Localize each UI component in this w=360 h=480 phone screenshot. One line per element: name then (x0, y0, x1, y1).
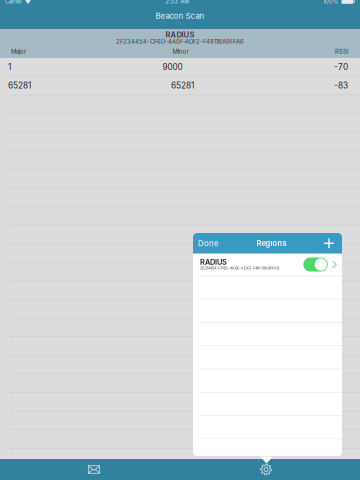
staticText: Beacon Scan (155, 11, 204, 21)
staticText: Carrier (5, 0, 22, 5)
staticText: RSSI (335, 48, 349, 55)
button[interactable]: RADIUS (193, 253, 342, 275)
staticText: 65281 (8, 81, 31, 91)
staticText: 2:33 AM (165, 0, 189, 5)
staticText: Minor (172, 48, 188, 55)
staticText: 2F234454-CF6D-4A0F-ADF2-F4911BA9FFA6 (200, 266, 279, 270)
staticText: -70 (334, 62, 348, 72)
staticText: 1 (8, 62, 11, 72)
button[interactable]: Add region (321, 233, 337, 253)
staticText: 65281 (171, 81, 194, 91)
button[interactable]: Messages (64, 459, 124, 480)
button[interactable]: Done (198, 233, 222, 253)
staticText: -83 (334, 81, 348, 91)
staticText: Regions (256, 239, 286, 248)
staticText: 9000 (162, 62, 182, 72)
staticText: RADIUS (200, 258, 227, 266)
staticText: 2F234454-CF6D-4A0F-ADF2-F4911BA9FFA6 (116, 38, 244, 45)
staticText: Major (11, 48, 26, 55)
staticText: RADIUS (165, 30, 194, 39)
button[interactable]: Settings (236, 459, 296, 480)
staticText: 100% (323, 0, 339, 5)
staticText: Done (198, 238, 219, 248)
